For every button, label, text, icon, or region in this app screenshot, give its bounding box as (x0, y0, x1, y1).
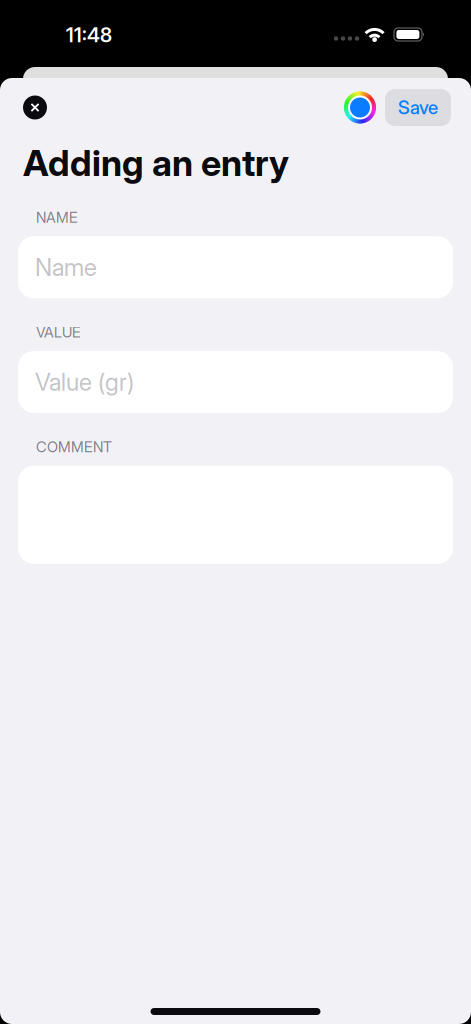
staticText: Adding an entry (23, 141, 289, 185)
staticText: VALUE (36, 323, 81, 341)
staticText: 11:48 (66, 23, 112, 47)
staticText: Name (35, 253, 97, 282)
button[interactable]: Close (17, 89, 53, 125)
button[interactable]: Name (18, 236, 453, 298)
button[interactable]: Value (gr) (18, 351, 453, 413)
button[interactable]: Save (385, 89, 451, 126)
staticText: NAME (36, 209, 78, 226)
button[interactable]: Pick colour (342, 89, 378, 125)
staticText: Save (398, 96, 438, 119)
staticText: Value (gr) (35, 367, 134, 396)
staticText: COMMENT (36, 438, 112, 456)
